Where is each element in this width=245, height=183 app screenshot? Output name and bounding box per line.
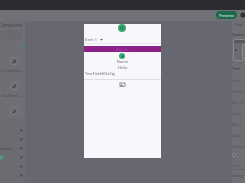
staticText: Spacing bbox=[232, 32, 245, 37]
staticText: Preview bbox=[219, 13, 234, 18]
staticText: Dropdown… bbox=[0, 68, 25, 73]
button[interactable]: Preview bbox=[216, 11, 237, 19]
staticText: Register bbox=[116, 47, 130, 52]
staticText: Text bbox=[232, 66, 240, 71]
staticText: Text Colo bbox=[232, 163, 245, 168]
staticText: Item 1 bbox=[85, 37, 98, 42]
staticText: Decoration bbox=[232, 144, 245, 149]
staticText: Value N bbox=[232, 78, 245, 83]
staticText: Components bbox=[0, 22, 24, 28]
staticText: Letter Sp bbox=[232, 111, 245, 116]
staticText: TextField#Ox3pj bbox=[85, 71, 116, 76]
button[interactable] bbox=[10, 107, 18, 115]
button[interactable]: More options bbox=[239, 11, 245, 19]
staticText: Align bbox=[232, 133, 241, 138]
staticText: Text Fie bbox=[235, 22, 245, 27]
button[interactable]: Collapse section bbox=[20, 43, 25, 48]
button[interactable] bbox=[10, 57, 18, 65]
staticText: Backgrou bbox=[232, 173, 245, 178]
button[interactable]: Item 1 bbox=[84, 36, 161, 43]
staticText: Theme bbox=[0, 146, 12, 151]
staticText: Outlined … bbox=[0, 93, 25, 98]
button[interactable]: Register bbox=[84, 46, 161, 52]
staticText: Word Spa bbox=[232, 122, 245, 127]
staticText: Hello bbox=[84, 65, 161, 70]
staticText: Name bbox=[84, 59, 161, 64]
button[interactable] bbox=[10, 82, 18, 90]
staticText: Size 16 bbox=[232, 100, 245, 105]
staticText: Theme Te bbox=[232, 89, 245, 94]
button[interactable] bbox=[233, 39, 245, 61]
